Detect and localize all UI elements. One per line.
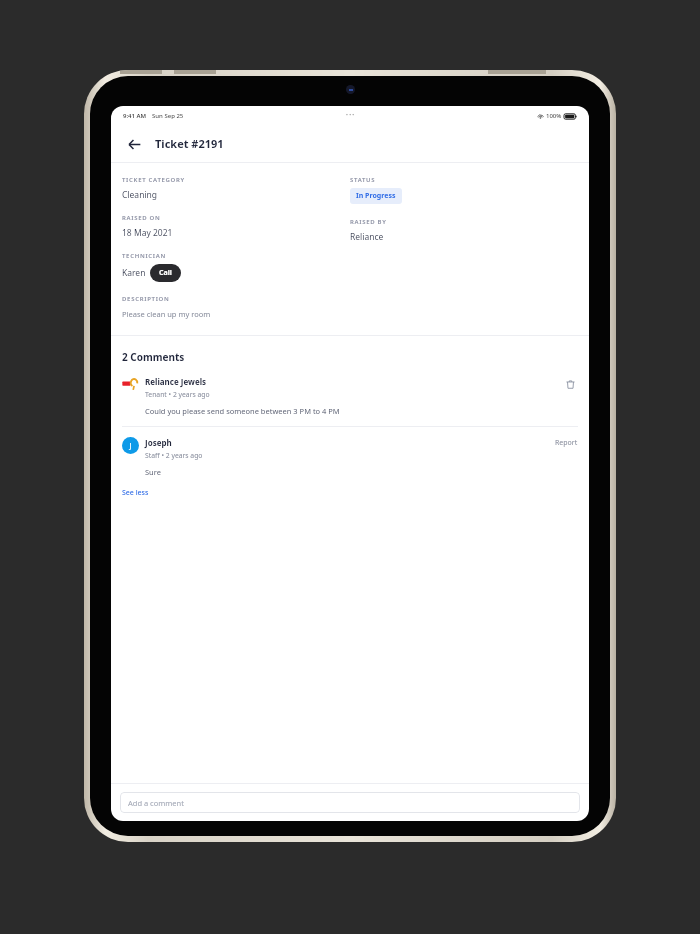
button[interactable]: In Progress xyxy=(350,188,402,204)
staticText: In Progress xyxy=(356,191,396,201)
staticText: RAISED ON xyxy=(122,214,161,222)
button[interactable]: Add a comment xyxy=(120,792,580,813)
staticText: STATUS xyxy=(350,176,376,184)
staticText: 9:41 AM xyxy=(123,112,147,120)
staticText: J xyxy=(129,441,132,451)
staticText: • • • xyxy=(346,112,355,119)
staticText: Sure xyxy=(145,467,161,477)
staticText: 100% xyxy=(546,112,562,120)
staticText: Ticket #2191 xyxy=(155,136,224,151)
button[interactable]: Call xyxy=(150,264,181,282)
staticText: 2 Comments xyxy=(122,350,185,364)
staticText: DESCRIPTION xyxy=(122,295,170,303)
staticText: Add a comment xyxy=(128,798,184,808)
staticText: Tenant • 2 years ago xyxy=(145,390,210,399)
staticText: Reliance Jewels xyxy=(145,376,207,387)
staticText: Could you please send someone between 3 … xyxy=(145,406,340,416)
staticText: Karen xyxy=(122,267,146,279)
staticText: 18 May 2021 xyxy=(122,227,173,239)
staticText: Reliance xyxy=(350,231,384,243)
staticText: Cleaning xyxy=(122,189,158,201)
staticText: Sun Sep 25 xyxy=(152,112,184,120)
staticText: TECHNICIAN xyxy=(122,252,166,260)
staticText: RAISED BY xyxy=(350,218,387,226)
staticText: Staff • 2 years ago xyxy=(145,451,203,460)
staticText: See less xyxy=(122,488,149,498)
button[interactable]: Back xyxy=(121,131,147,157)
staticText: Please clean up my room xyxy=(122,309,211,319)
button[interactable]: See less xyxy=(122,488,149,498)
button[interactable]: Delete comment xyxy=(562,376,578,392)
staticText: TICKET CATEGORY xyxy=(122,176,185,184)
staticText: Report xyxy=(555,438,578,448)
button[interactable]: Report xyxy=(551,437,578,448)
staticText: Joseph xyxy=(145,437,172,448)
staticText: Call xyxy=(159,268,172,278)
